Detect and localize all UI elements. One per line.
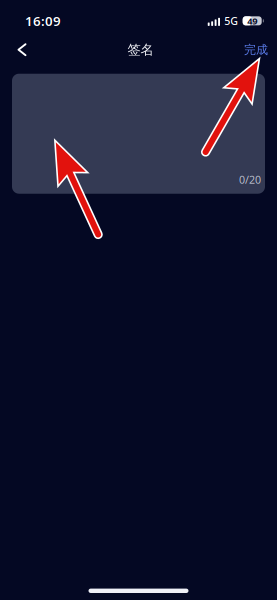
staticText: 49: [247, 15, 257, 27]
button[interactable]: Back: [7, 36, 37, 63]
staticText: 签名: [127, 41, 153, 58]
staticText: 16:09: [25, 12, 61, 30]
staticText: 完成: [244, 42, 268, 57]
staticText: 0/20: [239, 172, 261, 187]
button[interactable]: 完成: [239, 36, 273, 64]
staticText: 5G: [224, 14, 238, 28]
